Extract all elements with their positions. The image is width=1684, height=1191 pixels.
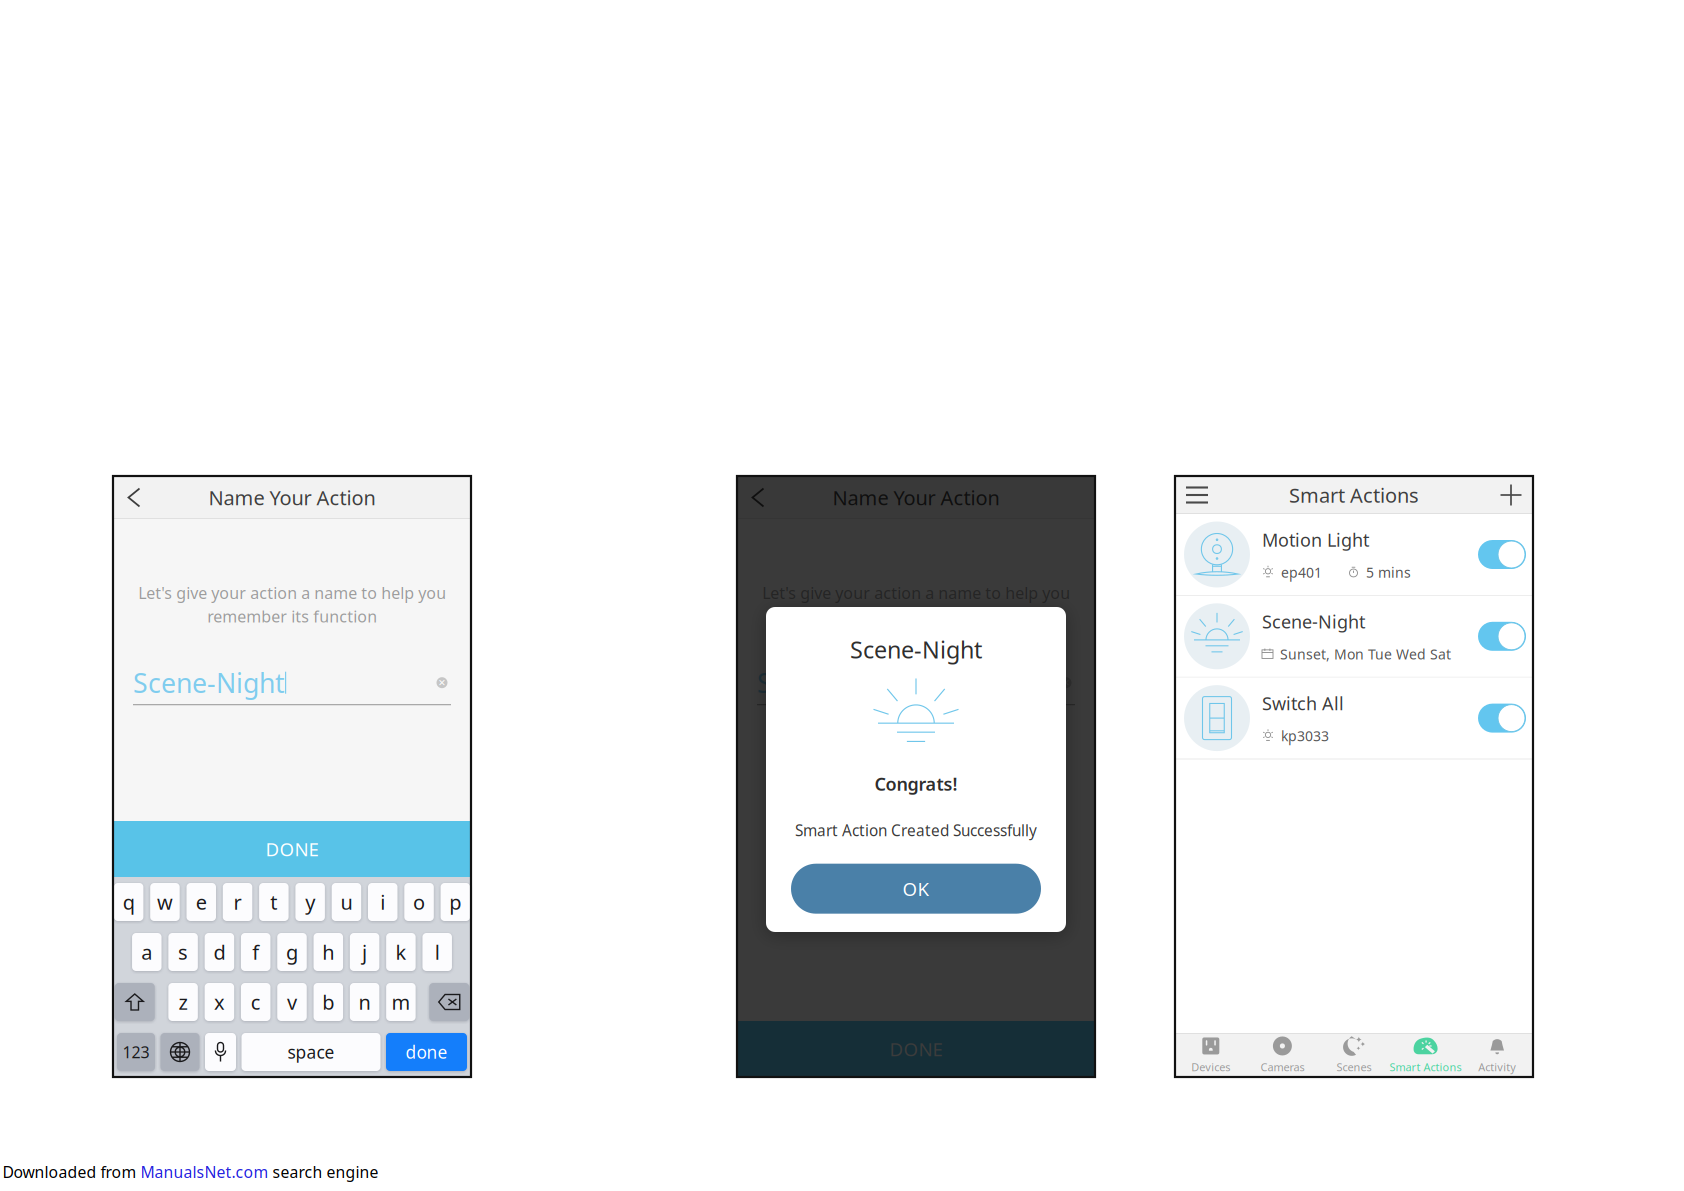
staticText: Devices — [1191, 1059, 1230, 1075]
button[interactable]: Next keyboard — [160, 1033, 199, 1071]
staticText: m — [391, 987, 410, 1017]
button[interactable]: Clear text — [1057, 674, 1075, 692]
staticText: p — [449, 887, 461, 917]
button[interactable]: OK — [791, 864, 1041, 914]
staticText: y — [305, 887, 315, 917]
button[interactable]: i — [368, 883, 397, 921]
button[interactable]: k — [386, 933, 416, 971]
button[interactable]: g — [277, 933, 307, 971]
staticText: z — [179, 987, 188, 1017]
staticText: u — [340, 887, 352, 917]
button[interactable]: DONE — [113, 821, 471, 877]
staticText: d — [213, 937, 225, 967]
staticText: Downloaded from — [2, 1160, 140, 1183]
staticText: OK — [902, 875, 929, 902]
button[interactable]: r — [223, 883, 252, 921]
staticText: x — [214, 987, 225, 1017]
button[interactable]: w — [150, 883, 180, 921]
button[interactable]: Motion Light — [1175, 514, 1533, 595]
button[interactable]: Devices — [1175, 1033, 1247, 1077]
staticText: Scene-Night — [757, 663, 909, 702]
staticText: 123 — [122, 1040, 149, 1064]
button[interactable]: m — [386, 983, 416, 1021]
button[interactable]: a — [132, 933, 162, 971]
button[interactable]: v — [277, 983, 307, 1021]
staticText: q — [123, 887, 135, 917]
staticText: Smart Action Created Successfully — [795, 819, 1037, 842]
staticText: r — [234, 887, 242, 917]
button[interactable]: q — [114, 883, 143, 921]
button[interactable]: d — [205, 933, 234, 971]
staticText: ep401 — [1281, 562, 1322, 582]
staticText: Activity — [1478, 1059, 1516, 1075]
button[interactable]: u — [332, 883, 361, 921]
staticText: Smart Actions — [1289, 480, 1419, 510]
button[interactable]: 123 — [117, 1033, 155, 1071]
button[interactable]: o — [404, 883, 434, 921]
button[interactable]: x — [205, 983, 234, 1021]
button[interactable]: l — [422, 933, 452, 971]
button[interactable]: ManualsNet.com — [140, 1160, 268, 1183]
button[interactable]: Activity — [1461, 1033, 1533, 1077]
staticText: Motion Light — [1262, 526, 1369, 553]
staticText: done — [405, 1039, 447, 1065]
staticText: e — [196, 887, 207, 917]
staticText: n — [359, 987, 371, 1017]
button[interactable]: Scenes — [1318, 1033, 1390, 1077]
staticText: Sunset, Mon Tue Wed Sat — [1280, 644, 1451, 664]
staticText: Scene-Night — [850, 632, 982, 667]
button[interactable]: Cameras — [1247, 1033, 1318, 1077]
staticText: Let's give your action a name to help yo… — [762, 581, 1070, 628]
staticText: o — [413, 887, 425, 917]
staticText: f — [252, 937, 259, 967]
button[interactable]: Dictate — [205, 1033, 236, 1071]
button[interactable]: n — [350, 983, 379, 1021]
staticText: c — [251, 987, 261, 1017]
button[interactable]: s — [168, 933, 198, 971]
staticText: Switch All — [1262, 690, 1344, 717]
button[interactable]: e — [186, 883, 216, 921]
button[interactable]: Shift — [115, 983, 155, 1021]
staticText: ✕ — [438, 677, 446, 688]
staticText: search engine — [268, 1160, 378, 1183]
staticText: Scene-Night — [133, 663, 285, 702]
staticText: h — [322, 937, 334, 967]
button[interactable]: Smart Actions — [1390, 1033, 1461, 1077]
button[interactable]: Switch All — [1175, 678, 1533, 759]
button[interactable]: c — [241, 983, 270, 1021]
button[interactable]: Scene-Night — [1175, 596, 1533, 677]
staticText: kp3033 — [1281, 725, 1329, 746]
button[interactable]: DONE — [737, 1021, 1095, 1077]
staticText: k — [395, 937, 406, 967]
staticText: Let's give your action a name to help yo… — [138, 581, 446, 628]
button[interactable]: t — [259, 883, 289, 921]
button[interactable]: j — [350, 933, 379, 971]
button[interactable]: f — [241, 933, 270, 971]
button[interactable]: y — [295, 883, 325, 921]
staticText: Cameras — [1260, 1059, 1304, 1075]
staticText: l — [435, 937, 440, 967]
button[interactable]: done — [386, 1033, 467, 1071]
staticText: Scene-Night — [1262, 608, 1365, 635]
button[interactable]: Delete — [429, 983, 469, 1021]
staticText: b — [322, 987, 334, 1017]
staticText: i — [380, 887, 385, 917]
button[interactable]: Back — [113, 476, 155, 519]
button[interactable]: p — [441, 883, 470, 921]
staticText: s — [178, 937, 188, 967]
staticText: Smart Actions — [1390, 1059, 1462, 1075]
button[interactable]: Back — [737, 476, 779, 519]
button[interactable]: Add smart action — [1489, 477, 1533, 513]
button[interactable]: Clear text — [433, 674, 451, 692]
staticText: ✕ — [1062, 677, 1070, 688]
button[interactable]: b — [313, 983, 343, 1021]
staticText: space — [287, 1039, 334, 1065]
button[interactable]: space — [241, 1033, 380, 1071]
staticText: ManualsNet.com — [140, 1160, 268, 1183]
button[interactable]: Menu — [1175, 477, 1219, 513]
staticText: j — [362, 937, 367, 967]
staticText: v — [287, 987, 297, 1017]
button[interactable]: z — [168, 983, 198, 1021]
button[interactable]: h — [314, 933, 343, 971]
staticText: Name Your Action — [832, 483, 999, 512]
